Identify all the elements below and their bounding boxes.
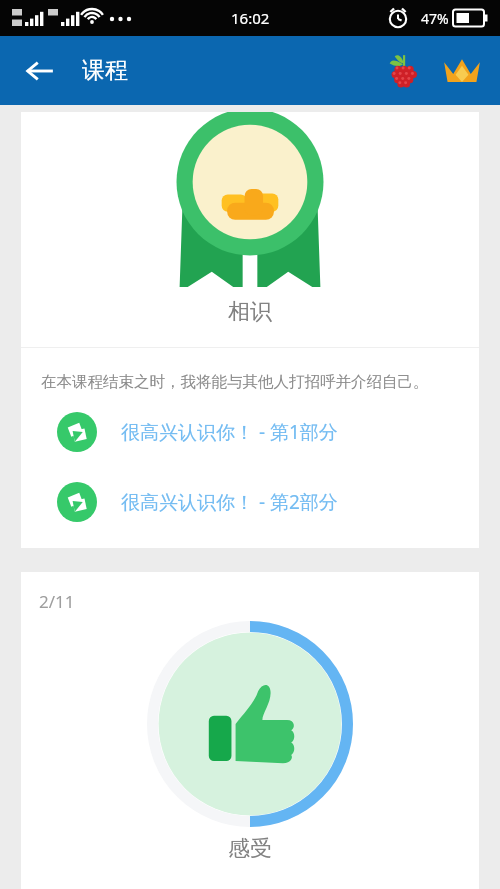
button[interactable]: 2/11 xyxy=(21,572,479,889)
staticText: 感受 xyxy=(21,835,479,863)
button[interactable]: Back xyxy=(12,43,68,99)
staticText: 课程 xyxy=(82,56,128,85)
staticText: 16:02 xyxy=(231,8,270,28)
button[interactable]: 很高兴认识你！ - 第2部分 xyxy=(21,482,479,522)
button[interactable]: 相识 xyxy=(21,112,479,347)
button[interactable]: Raspberry xyxy=(380,48,426,94)
staticText: 47% xyxy=(421,9,449,28)
staticText: 相识 xyxy=(228,298,272,326)
staticText: 很高兴认识你！ - 第1部分 xyxy=(121,419,338,445)
button[interactable]: Crown xyxy=(438,47,486,95)
staticText: 在本课程结束之时，我将能与其他人打招呼并介绍自己。 xyxy=(41,372,455,392)
staticText: 很高兴认识你！ - 第2部分 xyxy=(121,489,338,515)
staticText: 2/11 xyxy=(39,590,75,613)
button[interactable]: 很高兴认识你！ - 第1部分 xyxy=(21,412,479,452)
